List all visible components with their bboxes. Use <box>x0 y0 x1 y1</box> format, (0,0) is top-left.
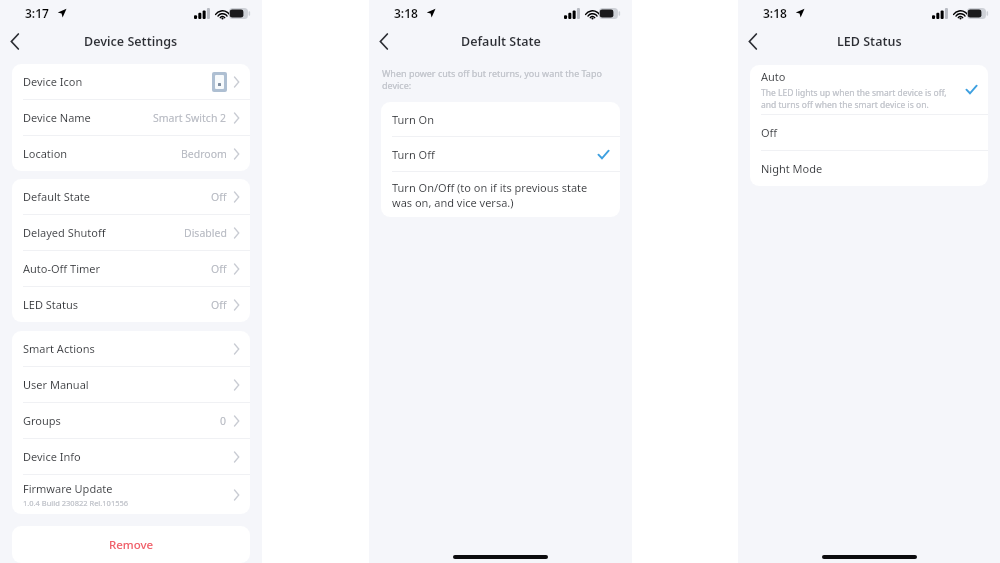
button[interactable]: Back <box>0 26 30 56</box>
staticText: Auto-Off Timer <box>23 261 100 276</box>
staticText: Smart Switch 2 <box>153 111 227 125</box>
staticText: LED Status <box>837 33 902 50</box>
button[interactable]: Back <box>738 26 768 56</box>
button[interactable]: Groups <box>12 403 250 438</box>
button[interactable]: Smart Actions <box>12 331 250 366</box>
button[interactable]: LED Status <box>12 287 250 322</box>
button[interactable]: Turn On/Off (to on if its previous state… <box>381 172 620 217</box>
staticText: Default State <box>23 189 91 204</box>
button[interactable]: Location <box>12 136 250 171</box>
staticText: 3:18 <box>763 5 787 21</box>
staticText: Off <box>211 298 227 312</box>
staticText: Device Settings <box>84 33 178 50</box>
staticText: Off <box>211 262 227 276</box>
staticText: Auto <box>761 69 786 84</box>
staticText: Device Icon <box>23 74 83 89</box>
staticText: User Manual <box>23 377 89 392</box>
staticText: Night Mode <box>761 161 977 176</box>
button[interactable]: Default State <box>12 179 250 214</box>
staticText: Location <box>23 146 68 161</box>
button[interactable]: Device Icon <box>12 64 250 99</box>
staticText: Groups <box>23 413 61 428</box>
staticText: Firmware Update <box>23 481 113 496</box>
staticText: 3:17 <box>25 5 49 21</box>
button[interactable]: Device Name <box>12 100 250 135</box>
staticText: When power cuts off but returns, you wan… <box>382 67 619 92</box>
staticText: Device Info <box>23 449 81 464</box>
staticText: Remove <box>109 537 154 553</box>
staticText: Default State <box>461 33 541 50</box>
staticText: Off <box>211 190 227 204</box>
staticText: Turn On <box>392 112 609 127</box>
button[interactable]: Off <box>750 115 988 150</box>
staticText: Disabled <box>184 226 227 240</box>
staticText: Delayed Shutoff <box>23 225 106 240</box>
staticText: 1.0.4 Build 230822 Rel.101556 <box>23 498 129 508</box>
button[interactable]: User Manual <box>12 367 250 402</box>
button[interactable]: Auto-Off Timer <box>12 251 250 286</box>
staticText: Turn On/Off (to on if its previous state… <box>392 180 609 210</box>
button[interactable]: Device Info <box>12 439 250 474</box>
button[interactable]: Turn On <box>381 102 620 136</box>
staticText: Smart Actions <box>23 341 95 356</box>
staticText: Off <box>761 125 977 140</box>
button[interactable]: Turn Off <box>381 137 620 171</box>
button[interactable]: Firmware Update <box>12 475 250 514</box>
button[interactable]: Auto <box>750 65 988 114</box>
staticText: 3:18 <box>394 5 418 21</box>
staticText: Bedroom <box>181 147 227 161</box>
staticText: Device Name <box>23 110 91 125</box>
staticText: The LED lights up when the smart device … <box>761 87 960 111</box>
button[interactable]: Night Mode <box>750 151 988 186</box>
button[interactable]: Remove <box>12 526 250 563</box>
staticText: 0 <box>220 414 227 428</box>
button[interactable]: Delayed Shutoff <box>12 215 250 250</box>
staticText: LED Status <box>23 297 78 312</box>
button[interactable]: Back <box>369 26 399 56</box>
staticText: Turn Off <box>392 147 598 162</box>
